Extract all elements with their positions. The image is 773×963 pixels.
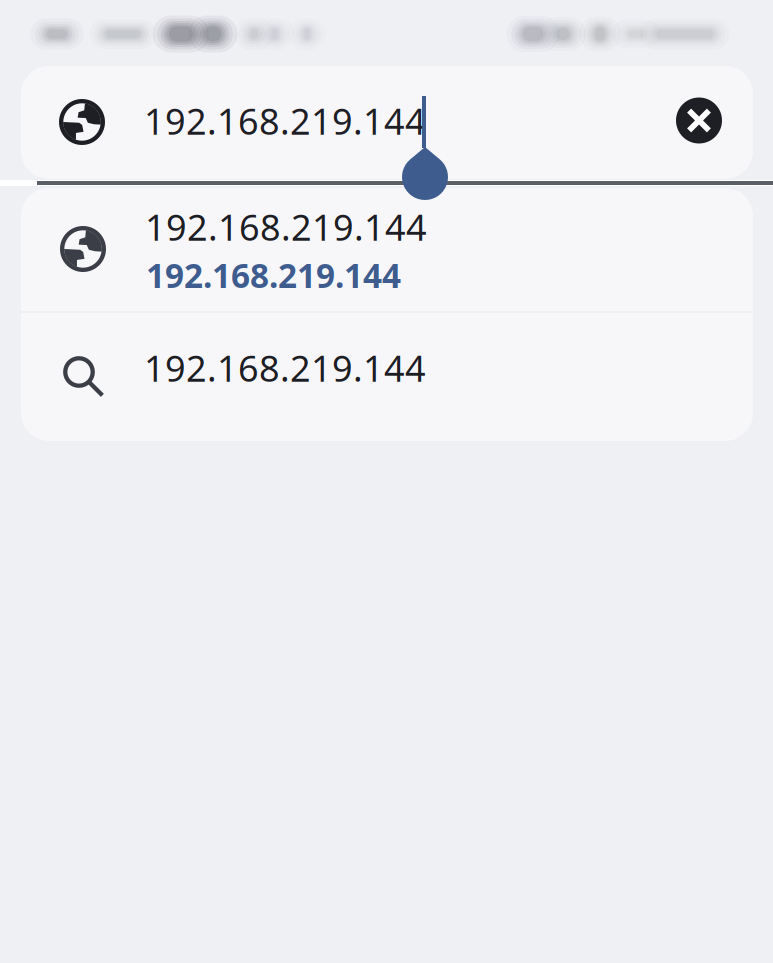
staticText: 192.168.219.144 bbox=[145, 203, 427, 251]
staticText: 192.168.219.144 bbox=[146, 253, 401, 297]
button[interactable]: 192.168.219.144 bbox=[21, 310, 753, 441]
staticText: 192.168.219.144 bbox=[144, 97, 426, 145]
button[interactable]: Clear text bbox=[654, 66, 744, 175]
staticText: 192.168.219.144 bbox=[144, 344, 426, 392]
button[interactable]: 192.168.219.144 bbox=[21, 188, 753, 308]
button[interactable]: 192.168.219.144 bbox=[21, 66, 753, 179]
